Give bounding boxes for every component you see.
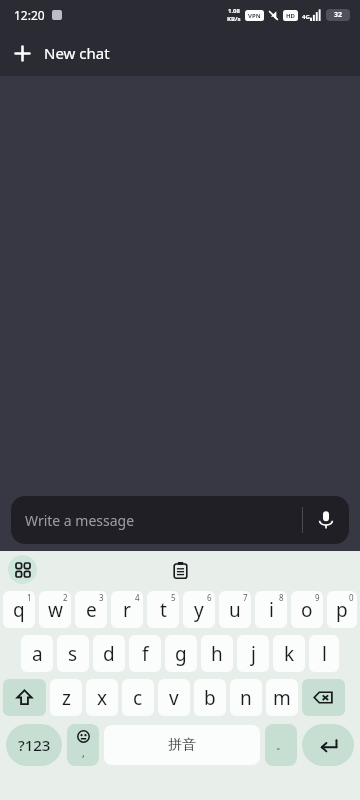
staticText: 拼音 [168, 736, 196, 754]
staticText: d [103, 641, 115, 667]
button[interactable]: z [50, 679, 82, 716]
staticText: z [62, 685, 71, 711]
staticText: x [97, 685, 108, 711]
button[interactable]: b [194, 679, 226, 716]
button[interactable]: ?123 [6, 724, 62, 766]
button[interactable]: t [147, 591, 179, 628]
button[interactable]: c [122, 679, 154, 716]
staticText: k [284, 641, 295, 667]
staticText: f [142, 641, 149, 667]
button[interactable]: y [183, 591, 215, 628]
staticText: p [336, 597, 348, 623]
staticText: b [204, 685, 216, 711]
staticText: t [160, 597, 167, 623]
button[interactable]: 。 [265, 724, 297, 766]
staticText: l [322, 641, 327, 667]
button[interactable]: n [230, 679, 262, 716]
button[interactable]: Backspace [302, 679, 345, 716]
button[interactable]: u [219, 591, 251, 628]
button[interactable]: o [291, 591, 323, 628]
button[interactable]: 拼音 [104, 725, 260, 765]
staticText: n [240, 685, 252, 711]
button[interactable]: p [327, 591, 357, 628]
button[interactable]: g [165, 635, 197, 672]
button[interactable]: i [255, 591, 287, 628]
staticText: 32 [334, 10, 343, 20]
button[interactable]: r [111, 591, 143, 628]
staticText: 7 [243, 592, 248, 603]
button[interactable]: h [201, 635, 233, 672]
button[interactable]: Keyboard options [8, 555, 37, 584]
staticText: 1.08 [228, 7, 240, 15]
button[interactable]: w [39, 591, 71, 628]
staticText: r [123, 597, 131, 623]
staticText: y [194, 597, 204, 623]
staticText: u [229, 597, 241, 623]
button[interactable]: Enter [302, 724, 354, 766]
button[interactable]: k [273, 635, 305, 672]
button[interactable]: New chat [0, 30, 360, 76]
staticText: 。 [276, 738, 287, 752]
staticText: q [13, 597, 25, 623]
staticText: 3 [99, 592, 104, 603]
staticText: Write a message [25, 511, 302, 530]
staticText: m [273, 685, 291, 711]
staticText: VPN [248, 12, 261, 20]
button[interactable]: f [129, 635, 161, 672]
staticText: j [251, 641, 256, 667]
button[interactable]: a [21, 635, 53, 672]
button[interactable]: Clipboard [164, 554, 196, 586]
staticText: 6 [207, 592, 212, 603]
staticText: 9 [315, 592, 320, 603]
staticText: s [68, 641, 78, 667]
button[interactable]: q [3, 591, 35, 628]
button[interactable]: e [75, 591, 107, 628]
button[interactable]: Emoji and comma [67, 724, 99, 766]
staticText: 4 [135, 592, 140, 603]
staticText: 0 [349, 592, 354, 603]
button[interactable]: x [86, 679, 118, 716]
staticText: i [269, 597, 274, 623]
button[interactable]: Shift [3, 679, 46, 716]
staticText: a [32, 641, 43, 667]
button[interactable]: j [237, 635, 269, 672]
staticText: , [82, 746, 85, 760]
staticText: 1 [27, 592, 32, 603]
staticText: w [48, 597, 63, 623]
button[interactable]: d [93, 635, 125, 672]
button[interactable]: v [158, 679, 190, 716]
staticText: New chat [44, 43, 110, 63]
staticText: v [169, 685, 179, 711]
staticText: ?123 [18, 735, 51, 755]
staticText: KB/s [227, 15, 241, 23]
staticText: o [301, 597, 313, 623]
staticText: h [211, 641, 223, 667]
staticText: g [175, 641, 187, 667]
staticText: 2 [63, 592, 68, 603]
button[interactable]: Voice input [303, 496, 349, 544]
button[interactable]: m [266, 679, 298, 716]
staticText: HD [286, 12, 295, 20]
button[interactable]: s [57, 635, 89, 672]
staticText: 8 [279, 592, 284, 603]
button[interactable]: Write a message [11, 496, 349, 544]
staticText: 4G [302, 13, 310, 21]
button[interactable]: l [309, 635, 339, 672]
staticText: 5 [171, 592, 176, 603]
staticText: c [133, 685, 143, 711]
staticText: 12:20 [14, 7, 45, 23]
staticText: e [86, 597, 97, 623]
